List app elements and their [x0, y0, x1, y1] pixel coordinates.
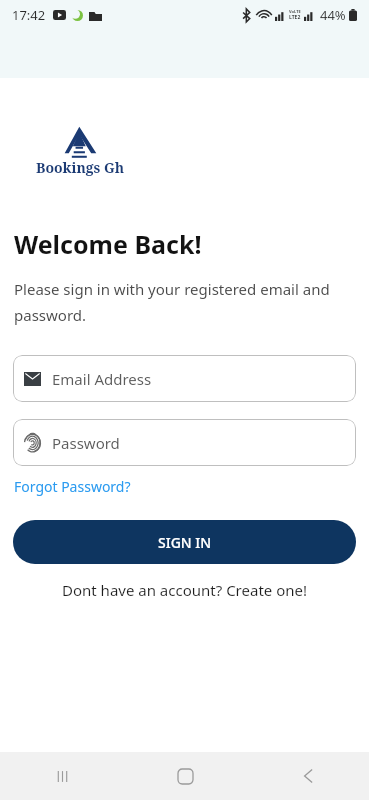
- staticText: Bookings Gh: [36, 158, 125, 177]
- button[interactable]: Back: [278, 752, 338, 800]
- staticText: 17:42: [12, 6, 46, 24]
- staticText: Please sign in with your registered emai…: [14, 279, 347, 326]
- staticText: Email Address: [52, 369, 152, 389]
- button[interactable]: Recent apps: [32, 752, 92, 800]
- button[interactable]: Forgot Password?: [13, 475, 132, 498]
- button[interactable]: Dont have an account? Create one!: [0, 580, 369, 600]
- button[interactable]: Password: [13, 419, 356, 466]
- staticText: LTE2: [289, 14, 301, 21]
- button[interactable]: SIGN IN: [13, 520, 356, 564]
- staticText: VoLTE: [289, 9, 301, 14]
- staticText: Welcome Back!: [14, 227, 202, 261]
- staticText: Dont have an account? Create one!: [62, 580, 307, 600]
- button[interactable]: Home: [155, 752, 215, 800]
- staticText: SIGN IN: [158, 533, 212, 552]
- button[interactable]: Email Address: [13, 355, 356, 402]
- staticText: 44%: [320, 6, 346, 24]
- staticText: Forgot Password?: [14, 477, 131, 496]
- staticText: Password: [52, 433, 120, 453]
